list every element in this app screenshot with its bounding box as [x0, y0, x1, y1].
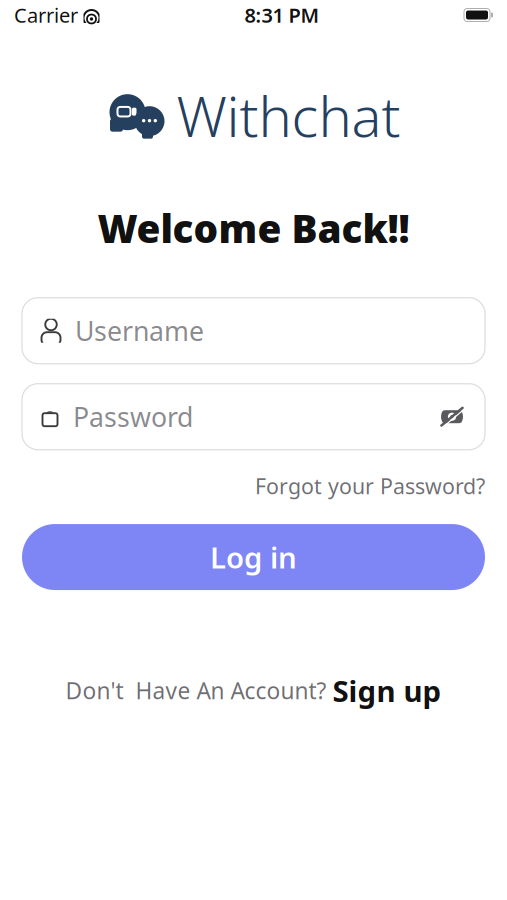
staticText: Log in [210, 538, 297, 577]
staticText: 8:31 PM [244, 2, 319, 28]
button[interactable]: Password [22, 384, 485, 450]
button[interactable]: Forgot your Password? [255, 468, 485, 504]
staticText: Forgot your Password? [255, 472, 485, 500]
staticText: Password [73, 399, 193, 434]
button[interactable]: Username [22, 298, 485, 364]
staticText: Username [75, 313, 204, 348]
button[interactable]: Don't Have An Account? [65, 671, 441, 710]
staticText: Withchat [176, 78, 400, 152]
staticText: Carrier [14, 2, 78, 28]
staticText: Sign up [332, 671, 441, 710]
button[interactable]: Log in [22, 524, 485, 590]
staticText: Don't Have An Account? [65, 675, 326, 706]
staticText: Welcome Back!! [97, 202, 409, 254]
